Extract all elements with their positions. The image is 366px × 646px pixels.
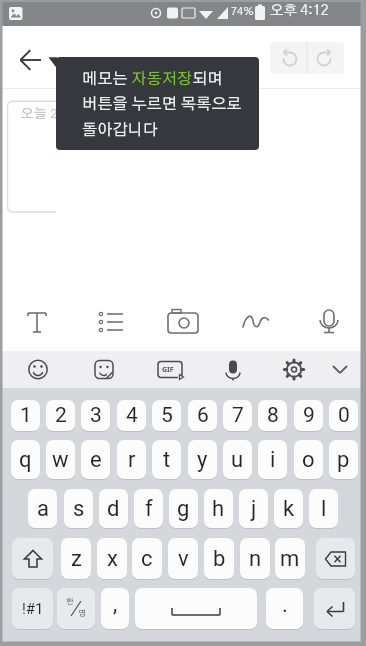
staticText: c xyxy=(141,546,153,572)
button[interactable]: t xyxy=(152,440,181,479)
staticText: r xyxy=(128,447,136,473)
staticText: p xyxy=(337,447,350,473)
staticText: y xyxy=(197,447,208,473)
button[interactable] xyxy=(10,296,64,351)
button[interactable]: 한 xyxy=(57,588,95,629)
staticText: x xyxy=(107,546,118,572)
staticText: g xyxy=(177,496,190,522)
button[interactable]: g xyxy=(169,489,198,528)
button[interactable] xyxy=(16,351,60,388)
staticText: t xyxy=(163,447,171,473)
button[interactable] xyxy=(307,42,344,74)
button[interactable]: !#1 xyxy=(12,588,53,629)
button[interactable]: k xyxy=(274,489,303,528)
staticText: 4 xyxy=(126,403,138,428)
button[interactable] xyxy=(316,538,355,579)
staticText: l xyxy=(321,496,327,522)
staticText: , xyxy=(113,591,118,617)
staticText: 메모는 자동저장되며 버튼을 누르면 목록으로 돌아갑니다 xyxy=(82,71,242,139)
button[interactable]: 0 xyxy=(329,400,358,431)
staticText: b xyxy=(213,546,226,572)
staticText: 5 xyxy=(161,403,173,428)
button[interactable]: i xyxy=(258,440,287,479)
button[interactable]: u xyxy=(223,440,252,479)
button[interactable]: c xyxy=(132,538,162,579)
staticText: 한 xyxy=(66,598,74,606)
button[interactable] xyxy=(318,351,362,388)
staticText: o xyxy=(302,447,315,473)
button[interactable] xyxy=(12,48,52,74)
button[interactable]: l xyxy=(309,489,338,528)
button[interactable]: v xyxy=(168,538,198,579)
button[interactable]: a xyxy=(28,489,57,528)
button[interactable]: , xyxy=(101,588,129,629)
staticText: 9 xyxy=(303,403,315,428)
button[interactable]: w xyxy=(46,440,75,479)
staticText: k xyxy=(283,496,295,522)
button[interactable]: 4 xyxy=(117,400,146,431)
button[interactable]: f xyxy=(134,489,163,528)
button[interactable]: s xyxy=(64,489,93,528)
button[interactable] xyxy=(270,42,307,74)
staticText: e xyxy=(90,447,102,473)
button[interactable]: 8 xyxy=(258,400,287,431)
staticText: n xyxy=(249,546,262,572)
staticText: a xyxy=(37,496,49,522)
button[interactable]: 6 xyxy=(188,400,217,431)
button[interactable] xyxy=(82,351,126,388)
staticText: . xyxy=(282,592,288,618)
staticText: 0 xyxy=(338,403,350,428)
staticText: 7 xyxy=(232,403,244,428)
button[interactable]: n xyxy=(240,538,270,579)
button[interactable] xyxy=(135,588,257,629)
button[interactable] xyxy=(148,351,192,388)
staticText: 6 xyxy=(197,403,209,428)
button[interactable] xyxy=(12,538,53,579)
button[interactable]: b xyxy=(204,538,234,579)
staticText: z xyxy=(71,546,82,572)
staticText: q xyxy=(19,447,32,473)
staticText: 오후 4:12 xyxy=(270,4,329,18)
button[interactable]: p xyxy=(329,440,358,479)
button[interactable]: 2 xyxy=(46,400,75,431)
staticText: d xyxy=(107,496,120,522)
staticText: !#1 xyxy=(22,600,44,618)
button[interactable] xyxy=(83,296,137,351)
button[interactable]: x xyxy=(97,538,127,579)
staticText: f xyxy=(145,496,153,522)
button[interactable]: y xyxy=(188,440,217,479)
button[interactable] xyxy=(211,351,255,388)
staticText: 2 xyxy=(55,403,67,428)
staticText: s xyxy=(73,496,85,522)
staticText: v xyxy=(178,546,189,572)
button[interactable] xyxy=(314,588,355,629)
button[interactable] xyxy=(156,296,210,351)
button[interactable]: 3 xyxy=(81,400,110,431)
button[interactable]: 7 xyxy=(223,400,252,431)
button[interactable]: 1 xyxy=(11,400,40,431)
button[interactable]: m xyxy=(275,538,305,579)
staticText: 8 xyxy=(267,403,279,428)
staticText: i xyxy=(270,447,276,473)
staticText: h xyxy=(212,496,225,522)
button[interactable]: . xyxy=(266,588,303,629)
button[interactable]: j xyxy=(239,489,268,528)
button[interactable] xyxy=(272,351,316,388)
button[interactable]: e xyxy=(81,440,110,479)
staticText: GIF xyxy=(162,365,174,375)
staticText: w xyxy=(52,447,69,473)
button[interactable]: h xyxy=(204,489,233,528)
button[interactable]: q xyxy=(11,440,40,479)
button[interactable]: d xyxy=(99,489,128,528)
staticText: 오늘 2:20 xyxy=(21,107,78,121)
button[interactable]: 9 xyxy=(294,400,323,431)
staticText: 3 xyxy=(90,403,102,428)
button[interactable]: o xyxy=(294,440,323,479)
button[interactable]: z xyxy=(61,538,91,579)
button[interactable]: 5 xyxy=(152,400,181,431)
staticText: u xyxy=(231,447,244,473)
button[interactable] xyxy=(302,296,356,351)
staticText: 영 xyxy=(78,610,86,618)
button[interactable] xyxy=(229,296,283,351)
button[interactable]: r xyxy=(117,440,146,479)
